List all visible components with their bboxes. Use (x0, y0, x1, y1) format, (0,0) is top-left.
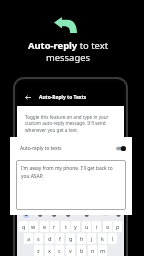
button[interactable]: Auto-reply to texts (10, 137, 132, 160)
button[interactable]: n (88, 245, 97, 256)
staticText: r (53, 223, 56, 230)
staticText: Auto-reply to texts (20, 145, 62, 152)
staticText: g (69, 235, 73, 242)
button[interactable]: z (34, 245, 43, 256)
staticText: y (74, 223, 77, 230)
button[interactable]: k (98, 233, 107, 244)
button[interactable]: x (45, 245, 54, 256)
staticText: w (31, 223, 36, 230)
button[interactable]: y (71, 221, 80, 232)
button[interactable]: e (40, 221, 49, 232)
button[interactable]: s (34, 233, 43, 244)
button[interactable]: Toggle auto-reply (116, 145, 126, 152)
staticText: n (91, 247, 95, 254)
staticText: a (27, 235, 31, 242)
staticText: d (48, 235, 52, 242)
staticText: z (37, 247, 40, 254)
staticText: v (69, 247, 72, 254)
staticText: i (96, 223, 98, 230)
staticText: u (85, 223, 89, 230)
staticText: m (100, 247, 106, 254)
button[interactable]: q (19, 221, 28, 232)
button[interactable]: l (108, 233, 117, 244)
button[interactable]: h (77, 233, 86, 244)
button[interactable]: v (66, 245, 75, 256)
staticText: c (58, 247, 61, 254)
staticText: q (22, 223, 26, 230)
button[interactable]: g (66, 233, 75, 244)
button[interactable]: a (24, 233, 33, 244)
staticText: k (101, 235, 104, 242)
button[interactable]: i (92, 221, 101, 232)
button[interactable]: w (29, 221, 38, 232)
button[interactable]: c (55, 245, 64, 256)
staticText: I'm away from my phone. I'll get back to… (21, 165, 113, 180)
staticText: Auto-reply to text messages (25, 39, 111, 64)
staticText: Toggle this feature on and type in your … (25, 114, 110, 134)
button[interactable]: f (55, 233, 64, 244)
staticText: Auto-Reply to Texts (39, 94, 87, 101)
button[interactable]: t (61, 221, 70, 232)
button[interactable]: b (77, 245, 86, 256)
button[interactable]: j (87, 233, 96, 244)
staticText: t (65, 223, 67, 230)
button[interactable]: m (98, 245, 107, 256)
staticText: e (43, 223, 47, 230)
button[interactable]: p (113, 221, 122, 232)
staticText: o (106, 223, 110, 230)
staticText: x (48, 247, 51, 254)
staticText: l (112, 235, 114, 242)
staticText: b (80, 247, 84, 254)
staticText: h (80, 235, 84, 242)
staticText: p (116, 223, 120, 230)
staticText: f (59, 235, 61, 242)
button[interactable]: o (103, 221, 112, 232)
button[interactable]: Back (22, 92, 33, 103)
button[interactable]: u (82, 221, 91, 232)
button[interactable]: d (45, 233, 54, 244)
button[interactable]: r (50, 221, 59, 232)
staticText: s (37, 235, 40, 242)
staticText: j (91, 235, 93, 242)
other: Auto-reply (54, 17, 77, 33)
